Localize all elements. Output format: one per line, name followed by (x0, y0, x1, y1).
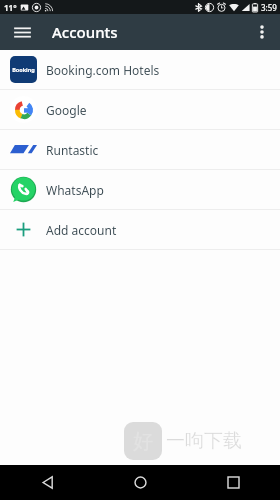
button[interactable]: Open navigation menu (8, 18, 36, 46)
staticText: 11° (4, 2, 17, 13)
staticText: WhatsApp (46, 182, 104, 198)
button[interactable]: Booking (0, 50, 280, 89)
staticText: Booking (12, 66, 35, 73)
staticText: Booking.com Hotels (46, 62, 160, 78)
staticText: 3:59 (261, 2, 277, 13)
staticText: Accounts (52, 22, 118, 42)
staticText: 一呴下载 (166, 429, 242, 453)
staticText: Runtastic (46, 142, 99, 158)
button[interactable]: More options (248, 18, 276, 46)
button[interactable]: Add account (0, 210, 280, 249)
button[interactable]: Back (0, 465, 94, 500)
button[interactable]: Home (94, 465, 187, 500)
button[interactable]: Recent apps (187, 465, 280, 500)
button[interactable]: WhatsApp (0, 170, 280, 209)
button[interactable]: Runtastic (0, 130, 280, 169)
button[interactable]: Google (0, 90, 280, 129)
staticText: Google (46, 102, 87, 118)
staticText: Add account (46, 222, 117, 238)
